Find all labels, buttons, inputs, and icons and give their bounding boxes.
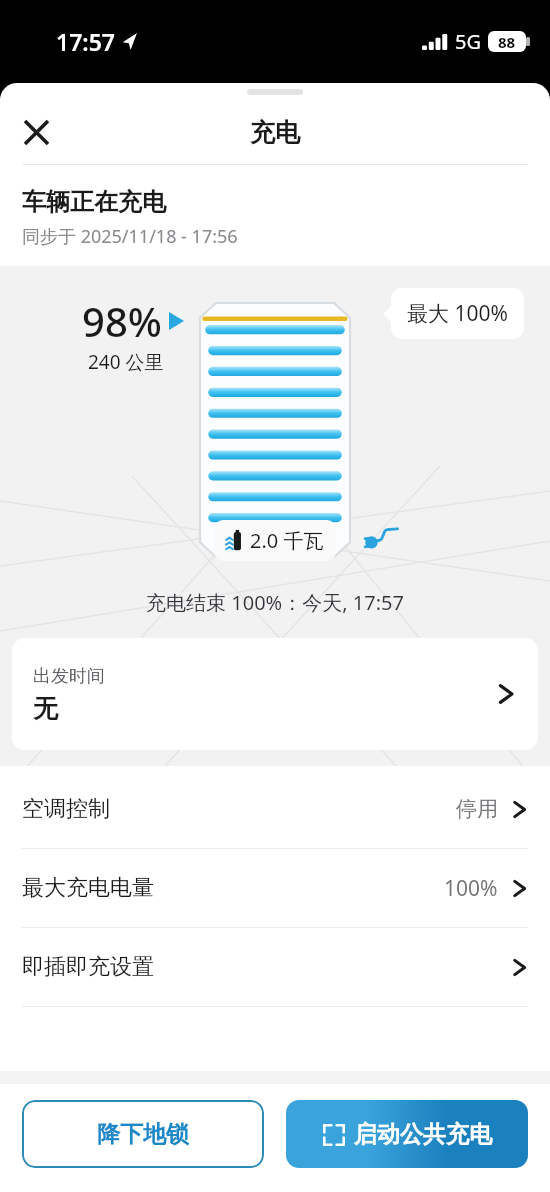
staticText: 空调控制 bbox=[22, 795, 110, 823]
staticText: 降下地锁 bbox=[97, 1120, 189, 1149]
button[interactable]: 启动公共充电 bbox=[286, 1100, 528, 1168]
button[interactable]: 降下地锁 bbox=[22, 1100, 264, 1168]
staticText: 100% bbox=[444, 874, 498, 903]
button[interactable]: 即插即充设置 bbox=[0, 928, 550, 1006]
staticText: 车辆正在充电 bbox=[22, 187, 166, 217]
staticText: 240 公里 bbox=[88, 349, 164, 375]
staticText: 出发时间 bbox=[33, 665, 105, 688]
staticText: 启动公共充电 bbox=[354, 1120, 492, 1149]
staticText: 最大充电电量 bbox=[22, 874, 154, 902]
button[interactable]: 出发时间 bbox=[12, 638, 538, 750]
staticText: 即插即充设置 bbox=[22, 953, 154, 981]
staticText: 88 bbox=[498, 32, 516, 52]
staticText: 充电结束 100%：今天, 17:57 bbox=[146, 589, 404, 616]
staticText: 无 bbox=[33, 693, 58, 724]
staticText: 同步于 2025/11/18 - 17:56 bbox=[22, 224, 238, 249]
staticText: 17:57 bbox=[56, 26, 115, 57]
staticText: 充电 bbox=[250, 117, 300, 148]
button[interactable]: 空调控制 bbox=[0, 770, 550, 848]
staticText: 2.0 千瓦 bbox=[250, 527, 324, 554]
staticText: 停用 bbox=[456, 796, 498, 822]
button[interactable]: 最大充电电量 bbox=[0, 849, 550, 927]
staticText: 5G bbox=[455, 28, 481, 55]
staticText: 98% bbox=[82, 294, 162, 348]
staticText: 最大 100% bbox=[407, 299, 508, 328]
button[interactable]: Close bbox=[10, 106, 62, 158]
